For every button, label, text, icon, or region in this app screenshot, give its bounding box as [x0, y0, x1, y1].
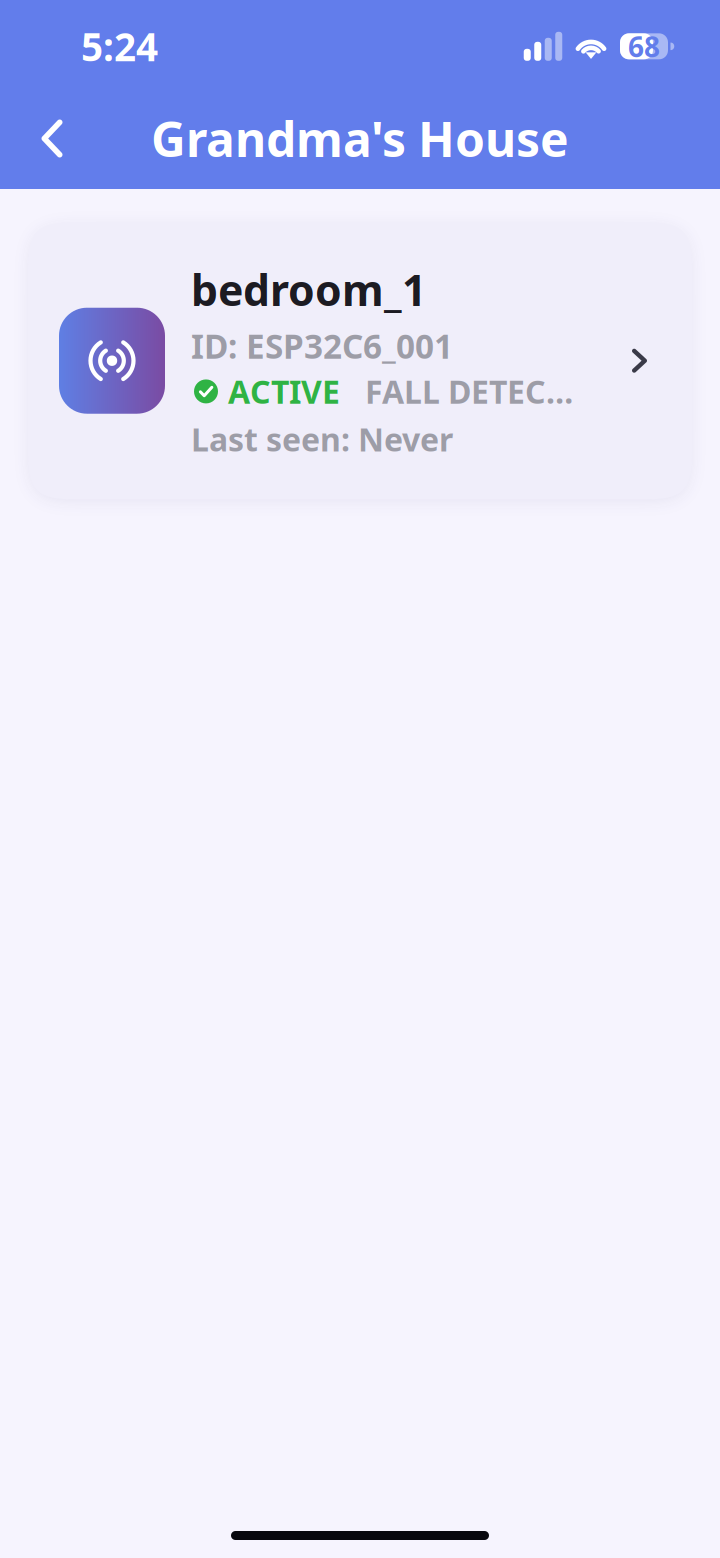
staticText: 68: [628, 28, 660, 65]
staticText: Grandma's House: [151, 107, 569, 170]
button[interactable]: Back: [21, 98, 83, 178]
staticText: Last seen: Never: [191, 418, 453, 460]
button[interactable]: bedroom_1: [28, 222, 692, 499]
staticText: bedroom_1: [191, 261, 426, 318]
staticText: ID: ESP32C6_001: [191, 324, 453, 368]
staticText: 5:24: [81, 21, 158, 72]
staticText: ACTIVE: [228, 370, 340, 413]
staticText: FALL DETEC…: [365, 370, 573, 413]
